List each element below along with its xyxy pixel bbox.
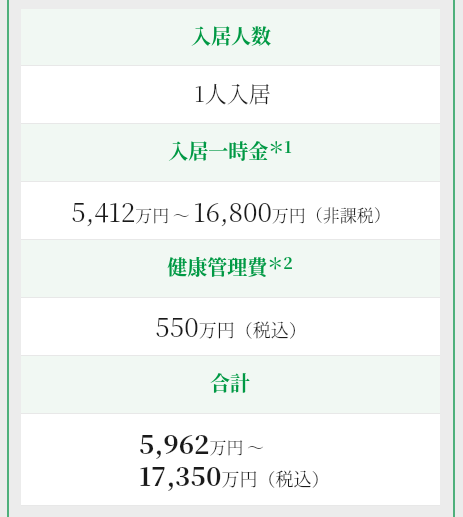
staticText: 5,412万円 〜 16,800万円（非課税） [71, 192, 391, 229]
button[interactable]: 合計 [21, 356, 440, 414]
button[interactable]: 5,412万円から16,800万円 非課税 [21, 182, 440, 240]
button[interactable]: 入居一時金 注1 [21, 124, 440, 182]
button[interactable]: 1人入居 [21, 66, 440, 124]
staticText: 入居人数 [191, 21, 271, 50]
button[interactable]: 550万円 税込 [21, 298, 440, 356]
button[interactable]: 合計 5,962万円から17,350万円 税込 [21, 414, 440, 506]
staticText: 合計 [210, 368, 250, 397]
staticText: 1人入居 [194, 77, 271, 109]
button[interactable]: 健康管理費 注2 [21, 240, 440, 298]
staticText: 5,962万円 〜 17,350万円（税込） [139, 424, 330, 494]
button[interactable]: 入居人数 [21, 9, 440, 66]
staticText: 550万円（税込） [155, 307, 307, 344]
staticText: 入居一時金＊1 [168, 135, 292, 165]
staticText: 健康管理費＊2 [167, 251, 293, 281]
